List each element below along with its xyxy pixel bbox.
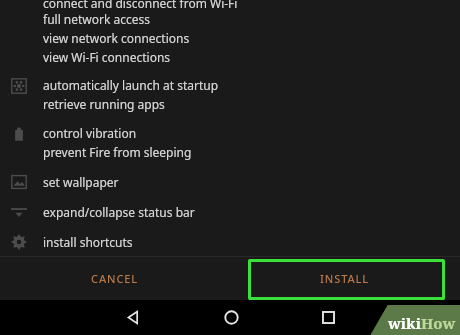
staticText: CANCEL: [91, 271, 139, 286]
staticText: retrieve running apps: [43, 96, 165, 112]
staticText: INSTALL: [320, 271, 370, 286]
staticText: install shortcuts: [43, 234, 133, 250]
other: automatically launch at startup: [11, 78, 27, 94]
staticText: connect and disconnect from Wi-Fi: [43, 0, 238, 11]
staticText: view network connections: [43, 30, 190, 46]
button[interactable]: Home: [220, 306, 243, 329]
staticText: automatically launch at startup: [43, 77, 219, 93]
staticText: prevent Fire from sleeping: [43, 144, 192, 160]
staticText: How: [421, 313, 456, 333]
other: set wallpaper: [11, 174, 27, 190]
other: install shortcuts: [11, 234, 27, 250]
staticText: control vibration: [43, 125, 137, 141]
staticText: full network access: [43, 11, 151, 27]
button[interactable]: CANCEL: [0, 257, 230, 300]
button[interactable]: Recent apps: [317, 306, 340, 329]
button[interactable]: INSTALL: [230, 257, 460, 300]
staticText: expand/collapse status bar: [43, 204, 195, 220]
staticText: view Wi-Fi connections: [43, 49, 171, 65]
other: expand/collapse status bar: [11, 204, 27, 220]
button[interactable]: Back: [122, 306, 145, 329]
staticText: set wallpaper: [43, 174, 119, 190]
other: control vibration: [11, 126, 27, 142]
staticText: wiki: [388, 313, 421, 333]
